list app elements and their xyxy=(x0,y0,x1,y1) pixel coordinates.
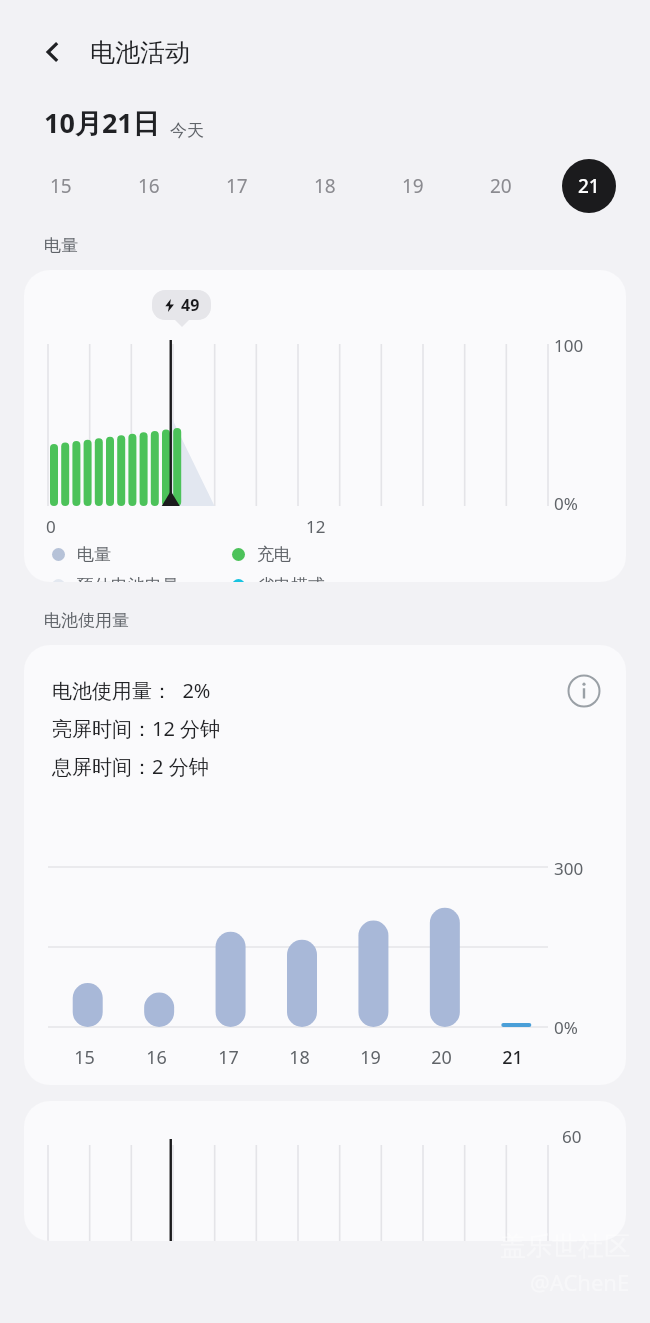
staticText: 19 xyxy=(402,173,424,199)
staticText: 15 xyxy=(74,1045,95,1070)
staticText: 21 xyxy=(578,173,600,199)
staticText: 100 xyxy=(554,334,584,357)
button[interactable]: 18 xyxy=(298,159,352,213)
staticText: 18 xyxy=(314,173,336,199)
staticText: 电池活动 xyxy=(90,37,190,68)
staticText: 20 xyxy=(490,173,512,199)
staticText: 17 xyxy=(226,173,248,199)
staticText: 盖乐世社区 xyxy=(500,1230,630,1263)
staticText: 预估电池电量 xyxy=(77,575,179,582)
button[interactable]: 电池使用量： 2% xyxy=(24,645,626,1085)
staticText: 10月21日 xyxy=(44,104,160,141)
staticText: 电池使用量 xyxy=(44,610,129,631)
staticText: 49 xyxy=(181,294,200,316)
button[interactable]: 15 xyxy=(34,159,88,213)
button[interactable]: Info xyxy=(562,669,606,713)
staticText: 电量 xyxy=(44,235,78,256)
staticText: 0% xyxy=(554,492,578,515)
staticText: 电量 xyxy=(77,544,111,565)
staticText: 今天 xyxy=(170,120,204,141)
staticText: 息屏时间：2 分钟 xyxy=(52,753,209,780)
staticText: 20 xyxy=(431,1045,452,1070)
staticText: 亮屏时间：12 分钟 xyxy=(52,715,221,742)
staticText: 60 xyxy=(562,1125,582,1148)
button[interactable]: 21 xyxy=(562,159,616,213)
staticText: 17 xyxy=(218,1045,239,1070)
staticText: 0 xyxy=(46,515,56,538)
staticText: 省电模式 xyxy=(257,575,325,582)
staticText: 12 xyxy=(306,515,326,538)
button[interactable]: 49 xyxy=(24,270,626,582)
button[interactable]: 60 xyxy=(24,1101,626,1241)
button[interactable]: 16 xyxy=(122,159,176,213)
staticText: 18 xyxy=(289,1045,310,1070)
staticText: 0% xyxy=(554,1016,578,1039)
button[interactable]: 19 xyxy=(386,159,440,213)
staticText: 电池使用量： 2% xyxy=(52,677,211,704)
staticText: 21 xyxy=(502,1045,523,1070)
button[interactable]: 20 xyxy=(474,159,528,213)
button[interactable]: Back xyxy=(30,29,76,75)
staticText: 300 xyxy=(554,857,584,880)
staticText: 19 xyxy=(360,1045,381,1070)
staticText: 16 xyxy=(138,173,160,199)
button[interactable]: 17 xyxy=(210,159,264,213)
staticText: 16 xyxy=(146,1045,167,1070)
staticText: 充电 xyxy=(257,544,291,565)
staticText: 15 xyxy=(50,173,72,199)
